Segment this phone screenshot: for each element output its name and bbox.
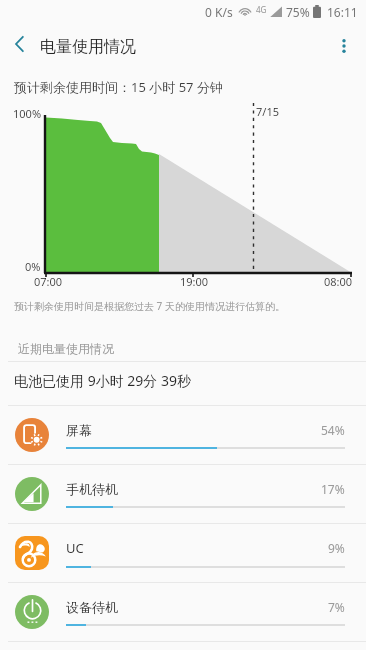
button[interactable]: 手机待机 xyxy=(0,465,366,523)
button[interactable]: UC xyxy=(0,524,366,582)
staticText: 0% xyxy=(25,259,41,274)
staticText: 0 K/s xyxy=(205,4,233,20)
staticText: 9% xyxy=(328,540,345,556)
staticText: 电池已使用 9小时 29分 39秒 xyxy=(14,371,191,390)
staticText: 19:00 xyxy=(180,274,209,289)
staticText: 手机待机 xyxy=(66,481,118,497)
staticText: 设备待机 xyxy=(66,599,118,615)
button[interactable]: 设备待机 xyxy=(0,583,366,641)
staticText: 近期电量使用情况 xyxy=(18,341,114,356)
staticText: 08:00 xyxy=(324,274,353,289)
staticText: 100% xyxy=(13,106,42,121)
staticText: 4G xyxy=(256,4,267,15)
staticText: 16:11 xyxy=(327,4,358,20)
staticText: 75% xyxy=(286,4,310,20)
button[interactable]: More options xyxy=(324,24,364,68)
staticText: UC xyxy=(66,539,84,557)
staticText: 预计剩余使用时间：15 小时 57 分钟 xyxy=(14,78,223,96)
button[interactable]: Back xyxy=(0,24,40,64)
staticText: 屏幕 xyxy=(66,422,92,438)
staticText: 7% xyxy=(328,599,345,615)
staticText: 54% xyxy=(321,422,345,438)
staticText: 17% xyxy=(321,481,345,497)
staticText: 7/15 xyxy=(256,104,279,119)
button[interactable]: 屏幕 xyxy=(0,406,366,464)
staticText: 07:00 xyxy=(34,274,63,289)
staticText: 预计剩余使用时间是根据您过去 7 天的使用情况进行估算的。 xyxy=(14,299,285,313)
staticText: 电量使用情况 xyxy=(40,37,136,57)
